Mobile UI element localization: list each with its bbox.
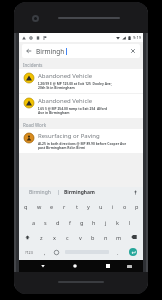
staticText: w <box>37 203 42 210</box>
button[interactable]: Voice input <box>131 188 140 197</box>
button[interactable]: Back <box>25 47 33 55</box>
staticText: p <box>135 203 139 210</box>
staticText: u <box>99 203 103 210</box>
staticText: f <box>69 219 71 226</box>
button[interactable]: b <box>87 230 99 244</box>
staticText: n <box>104 234 108 241</box>
staticText: Abandoned Vehicle <box>38 72 93 80</box>
button[interactable]: g <box>76 215 87 229</box>
staticText: i <box>112 203 114 210</box>
staticText: 9:19 <box>133 35 141 40</box>
staticText: Abandoned Vehicle <box>38 97 93 105</box>
button[interactable]: o <box>119 199 130 214</box>
button[interactable]: l <box>124 215 135 229</box>
button[interactable]: Resurfacing or Paving <box>19 129 143 153</box>
button[interactable]: v <box>74 230 86 244</box>
button[interactable]: Home <box>70 261 80 271</box>
button[interactable]: w <box>33 199 45 214</box>
staticText: v <box>79 234 82 241</box>
button[interactable]: Birmingh <box>22 187 58 198</box>
button[interactable]: a <box>28 215 39 229</box>
button[interactable]: Shift <box>20 230 35 244</box>
staticText: l <box>129 219 131 226</box>
staticText: , <box>44 249 46 256</box>
staticText: e <box>50 203 54 210</box>
button[interactable]: h <box>88 215 99 229</box>
staticText: Resurfacing or Paving <box>38 132 100 140</box>
button[interactable]: i <box>107 199 118 214</box>
staticText: b <box>91 234 95 241</box>
button[interactable]: r <box>59 199 70 214</box>
button[interactable]: Back <box>22 44 140 58</box>
staticText: c <box>66 234 69 241</box>
staticText: k <box>116 219 119 226</box>
button[interactable]: m <box>113 230 125 244</box>
button[interactable]: t <box>71 199 82 214</box>
staticText: Incidents <box>23 62 43 68</box>
staticText: Birmingh <box>29 189 51 196</box>
button[interactable]: . <box>112 245 123 259</box>
button[interactable]: n <box>100 230 112 244</box>
staticText: . <box>117 249 119 256</box>
button[interactable]: Emoji <box>51 245 62 259</box>
button[interactable]: p <box>131 199 142 214</box>
staticText: m <box>116 234 122 241</box>
staticText: I-20/59 E @ MP 125.00 at Exit 125 Dooley… <box>38 81 112 85</box>
button[interactable]: k <box>112 215 123 229</box>
staticText: z <box>40 234 43 241</box>
button[interactable]: ?123 <box>20 245 38 259</box>
staticText: s <box>44 219 47 226</box>
staticText: r <box>63 203 66 210</box>
staticText: j <box>105 219 107 226</box>
button[interactable]: d <box>52 215 63 229</box>
button[interactable]: Enter <box>124 245 142 259</box>
button[interactable]: j <box>100 215 111 229</box>
staticText: AL25 in both directions @ MP 89.90 befor… <box>38 141 127 145</box>
staticText: h <box>92 219 96 226</box>
button[interactable]: c <box>61 230 73 244</box>
button[interactable]: y <box>83 199 94 214</box>
staticText: t <box>76 203 78 210</box>
staticText: o <box>123 203 127 210</box>
button[interactable]: x <box>48 230 60 244</box>
button[interactable]: Switch keyboard <box>124 261 134 271</box>
button[interactable]: u <box>95 199 106 214</box>
staticText: Birmingham <box>64 189 95 196</box>
staticText: ?123 <box>25 250 33 255</box>
button[interactable]: Recent apps <box>103 261 113 271</box>
staticText: Road Work <box>23 122 47 128</box>
staticText: 20th St in Birmingham <box>38 85 75 89</box>
button[interactable]: Abandoned Vehicle <box>19 94 143 118</box>
staticText: a <box>32 219 36 226</box>
button[interactable]: z <box>36 230 47 244</box>
button[interactable]: Birmingham <box>59 187 99 198</box>
staticText: y <box>87 203 90 210</box>
staticText: I-65 S @ MP 254.00 ramp to Exit 254 Alfo… <box>38 106 108 110</box>
staticText: Birmingh <box>36 47 65 56</box>
staticText: q <box>24 203 28 210</box>
button[interactable]: , <box>39 245 50 259</box>
button[interactable]: Clear query <box>129 47 137 55</box>
staticText: x <box>53 234 56 241</box>
button[interactable]: e <box>46 199 58 214</box>
button[interactable]: f <box>64 215 75 229</box>
button[interactable]: Space <box>63 245 111 259</box>
button[interactable]: Back <box>38 261 48 271</box>
staticText: d <box>56 219 60 226</box>
button[interactable]: Abandoned Vehicle <box>19 69 143 93</box>
staticText: Ave in Birmingham <box>38 110 70 114</box>
staticText: past Birmingham Rd in Birmi <box>38 145 86 149</box>
button[interactable]: q <box>20 199 32 214</box>
staticText: g <box>80 219 84 226</box>
button[interactable]: Backspace <box>126 230 142 244</box>
button[interactable]: s <box>40 215 51 229</box>
